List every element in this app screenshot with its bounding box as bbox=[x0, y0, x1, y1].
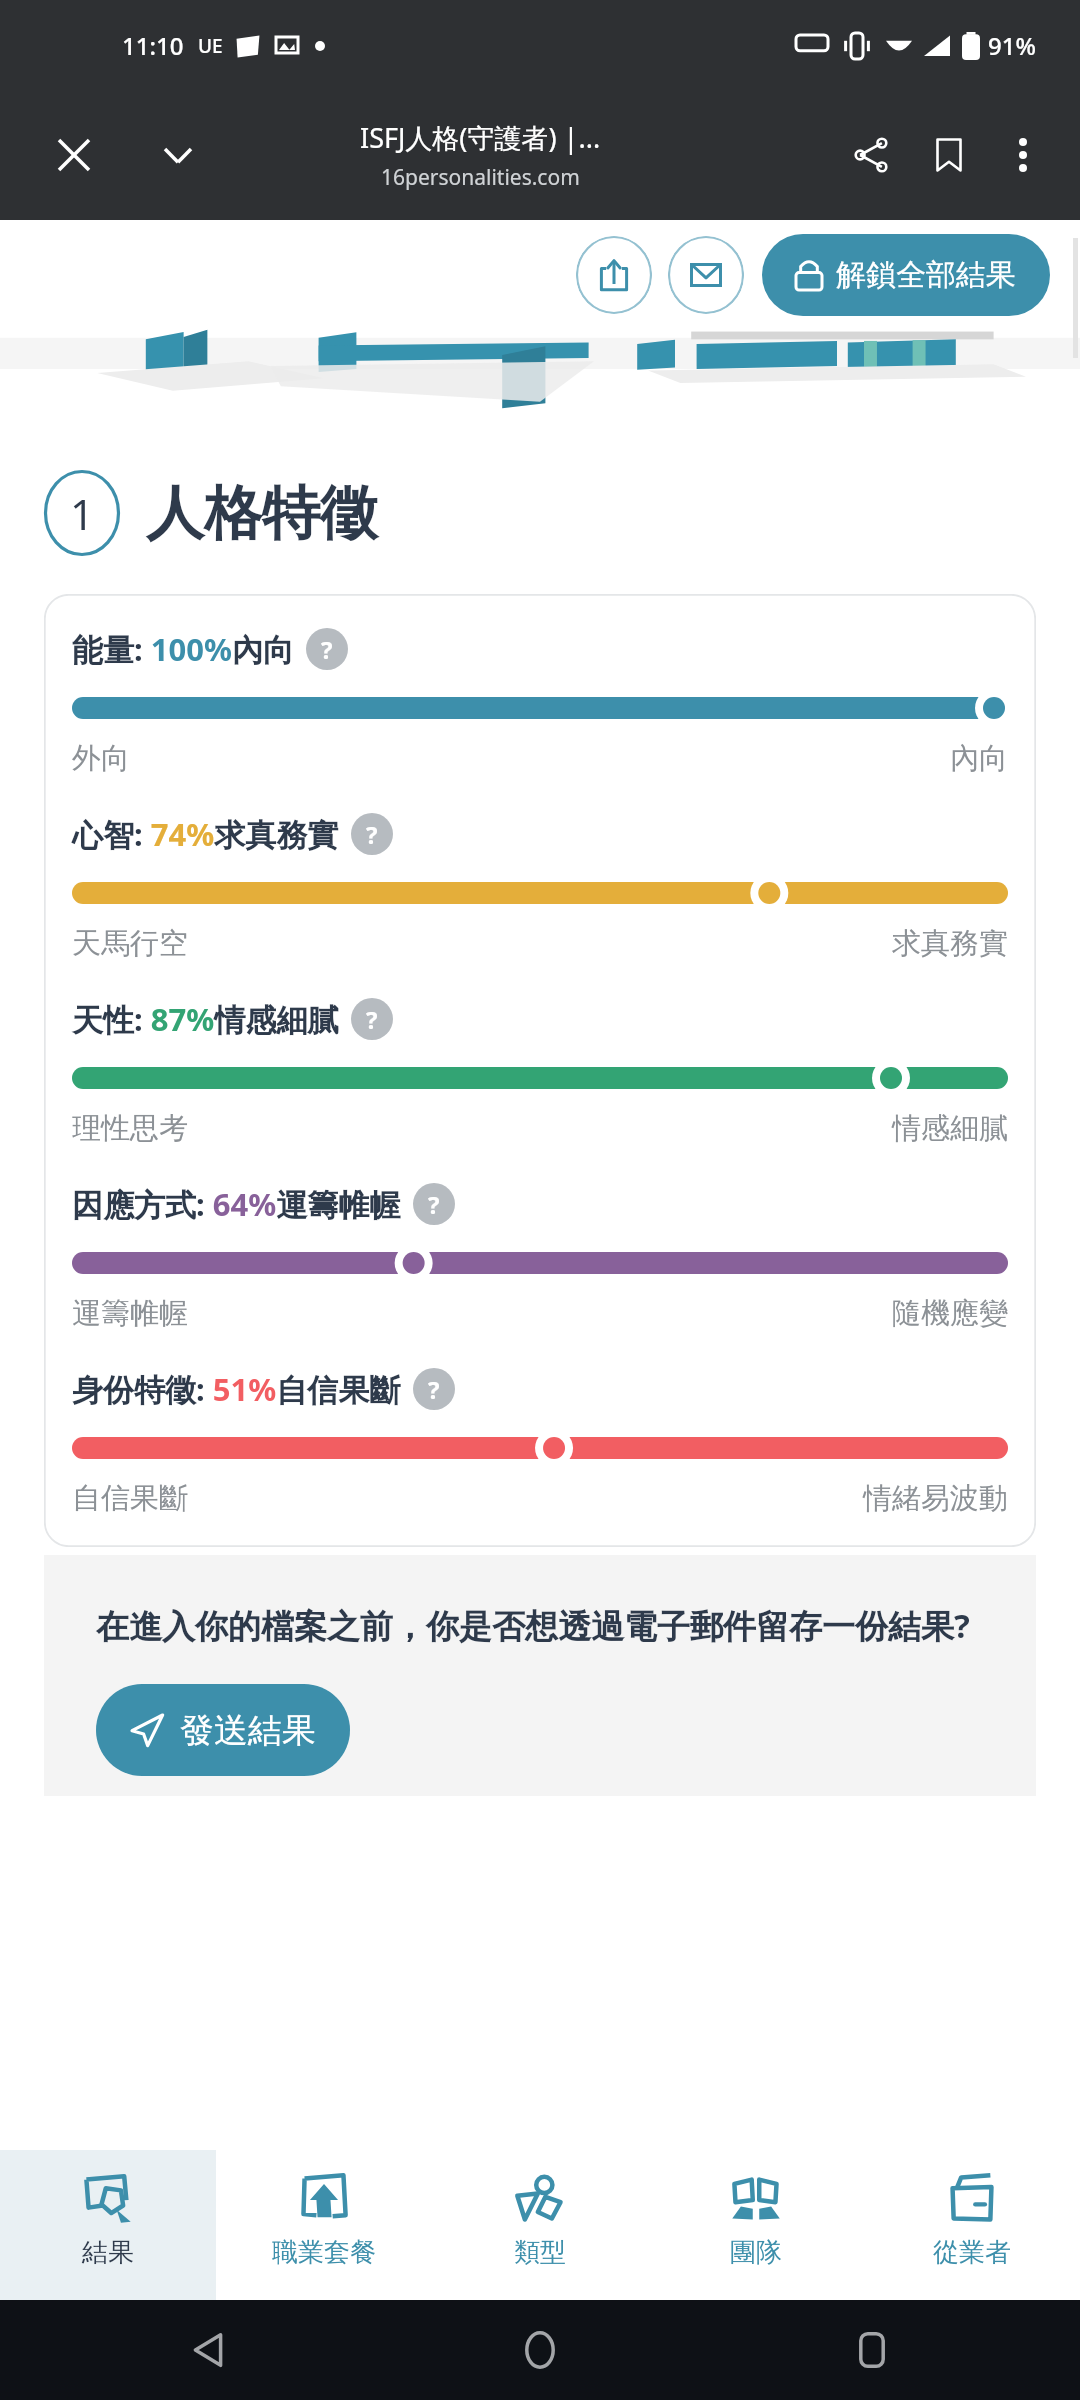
staticText: 隨機應變 bbox=[892, 1295, 1008, 1332]
staticText: ? bbox=[366, 1003, 378, 1036]
button[interactable]: Expand bbox=[150, 127, 206, 183]
staticText: 91% bbox=[988, 29, 1036, 62]
staticText: 人格特徵 bbox=[146, 477, 378, 550]
staticText: 天性: 87%情感細膩 bbox=[72, 998, 339, 1040]
button[interactable]: 職業套餐 bbox=[216, 2150, 432, 2300]
staticText: 在進入你的檔案之前，你是否想透過電子郵件留存一份結果? bbox=[96, 1603, 970, 1648]
button[interactable]: 結果 bbox=[0, 2150, 216, 2300]
button[interactable]: 身份特徵: 51%自信果斷 bbox=[72, 1368, 1008, 1517]
staticText: 外向 bbox=[72, 740, 130, 777]
staticText: 11:10 bbox=[122, 29, 184, 62]
button[interactable]: Email result bbox=[668, 236, 744, 314]
button[interactable]: More info about 天性 bbox=[351, 998, 393, 1040]
staticText: ? bbox=[321, 633, 333, 666]
button[interactable]: Bookmark bbox=[910, 116, 988, 194]
staticText: 發送結果 bbox=[180, 1709, 316, 1752]
staticText: 從業者 bbox=[933, 2236, 1011, 2269]
staticText: 情感細膩 bbox=[892, 1110, 1008, 1147]
staticText: ? bbox=[428, 1188, 440, 1221]
staticText: 運籌帷幄 bbox=[72, 1295, 188, 1332]
staticText: 能量: 100%內向 bbox=[72, 628, 294, 670]
button[interactable]: 解鎖全部結果 bbox=[762, 234, 1050, 316]
staticText: 天馬行空 bbox=[72, 925, 188, 962]
staticText: 心智: 74%求真務實 bbox=[72, 813, 339, 855]
button[interactable]: Share bbox=[832, 116, 910, 194]
button[interactable]: 從業者 bbox=[864, 2150, 1080, 2300]
staticText: 類型 bbox=[514, 2236, 566, 2269]
staticText: 內向 bbox=[950, 740, 1008, 777]
button[interactable]: Back bbox=[178, 2320, 238, 2380]
button[interactable]: 能量: 100%內向 bbox=[72, 628, 1008, 777]
button[interactable]: More info about 因應方式 bbox=[413, 1183, 455, 1225]
staticText: ISFJ人格(守護者) |... bbox=[360, 119, 601, 156]
button[interactable]: More info about 心智 bbox=[351, 813, 393, 855]
staticText: 自信果斷 bbox=[72, 1480, 188, 1517]
button[interactable]: Recent apps bbox=[842, 2320, 902, 2380]
button[interactable]: Share result bbox=[576, 236, 652, 314]
staticText: 1 bbox=[70, 485, 95, 542]
staticText: 理性思考 bbox=[72, 1110, 188, 1147]
button[interactable]: 類型 bbox=[432, 2150, 648, 2300]
staticText: 團隊 bbox=[730, 2236, 782, 2269]
button[interactable]: 天性: 87%情感細膩 bbox=[72, 998, 1008, 1147]
staticText: UE bbox=[198, 33, 223, 59]
staticText: 解鎖全部結果 bbox=[836, 256, 1016, 294]
button[interactable]: 發送結果 bbox=[96, 1684, 350, 1776]
staticText: 身份特徵: 51%自信果斷 bbox=[72, 1368, 401, 1410]
button[interactable]: 心智: 74%求真務實 bbox=[72, 813, 1008, 962]
button[interactable]: 因應方式: 64%運籌帷幄 bbox=[72, 1183, 1008, 1332]
staticText: 情緒易波動 bbox=[863, 1480, 1008, 1517]
button[interactable]: More options bbox=[988, 120, 1058, 190]
button[interactable]: More info about 能量 bbox=[306, 628, 348, 670]
staticText: ? bbox=[428, 1373, 440, 1406]
staticText: 求真務實 bbox=[892, 925, 1008, 962]
staticText: 16personalities.com bbox=[381, 163, 580, 192]
button[interactable]: Home bbox=[510, 2320, 570, 2380]
staticText: 職業套餐 bbox=[272, 2236, 376, 2269]
staticText: ? bbox=[366, 818, 378, 851]
button[interactable]: Close bbox=[46, 127, 102, 183]
staticText: 結果 bbox=[82, 2236, 134, 2269]
button[interactable]: More info about 身份特徵 bbox=[413, 1368, 455, 1410]
staticText: 因應方式: 64%運籌帷幄 bbox=[72, 1183, 401, 1225]
button[interactable]: 團隊 bbox=[648, 2150, 864, 2300]
